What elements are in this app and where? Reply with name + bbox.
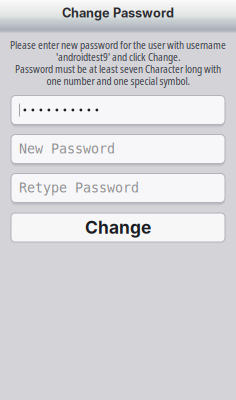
staticText: 'androidtest9' and click Change. [56,50,180,64]
staticText: Retype Password [19,180,139,196]
staticText: Change Password [62,5,174,21]
staticText: Password must be at least seven Characte… [15,62,221,76]
button[interactable]: Change [11,213,225,242]
staticText: Change [85,217,151,238]
staticText: one number and one special symbol. [46,74,189,88]
staticText: Please enter new password for the user w… [10,38,226,52]
staticText: New Password [19,141,115,157]
